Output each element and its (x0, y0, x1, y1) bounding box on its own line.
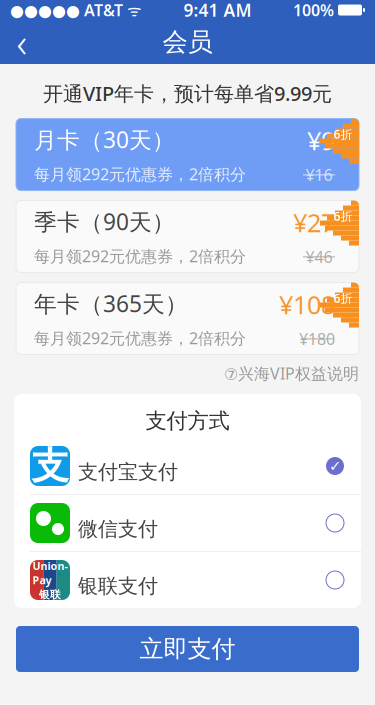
staticText: 支付宝支付 (78, 460, 178, 484)
staticText: 支付方式 (145, 408, 229, 434)
staticText: ¥180 (299, 328, 335, 349)
button[interactable]: 支 (14, 438, 361, 495)
button[interactable]: ⑦兴海VIP权益说明 (224, 363, 359, 384)
staticText: 每月领292元优惠券，2倍积分 (34, 163, 246, 185)
button[interactable]: 季卡（90天） (16, 201, 359, 273)
staticText: 月卡（30天） (34, 124, 175, 154)
staticText: 季卡（90天） (34, 206, 175, 236)
staticText: 银联 (39, 588, 61, 601)
staticText: ‹ (16, 15, 27, 68)
staticText: 年卡（365天） (34, 288, 188, 318)
button[interactable]: 年卡（365天） (16, 283, 359, 355)
staticText: UnionPay (32, 559, 67, 587)
button[interactable]: UnionPay (14, 552, 361, 608)
staticText: ¥16 (305, 164, 332, 185)
staticText: ᯤ (123, 0, 142, 21)
staticText: 银联支付 (78, 574, 158, 598)
staticText: 6折 (333, 290, 352, 306)
staticText: 100% (293, 0, 334, 21)
staticText: ●●●●● AT&T (10, 0, 123, 21)
staticText: 立即支付 (139, 634, 235, 664)
staticText: 每月领292元优惠券，2倍积分 (34, 327, 246, 349)
staticText: 开通VIP年卡，预计每单省9.99元 (43, 80, 332, 107)
button[interactable]: 立即支付 (16, 626, 359, 672)
staticText: 支 (31, 443, 68, 489)
staticText: 6折 (333, 208, 352, 224)
staticText: 9:41 AM (183, 0, 251, 21)
button[interactable]: 微信支付 (14, 495, 361, 552)
staticText: ¥108 (279, 288, 335, 321)
staticText: ¥46 (305, 246, 332, 267)
staticText: ⑦兴海VIP权益说明 (224, 363, 359, 384)
staticText: 会员 (162, 26, 212, 57)
staticText: ¥27 (293, 206, 335, 239)
button[interactable]: 月卡（30天） (16, 119, 359, 191)
button[interactable]: Back (0, 20, 44, 64)
staticText: 每月领292元优惠券，2倍积分 (34, 245, 246, 267)
staticText: ✓ (329, 458, 341, 474)
staticText: ¥9 (307, 124, 335, 157)
staticText: 微信支付 (78, 517, 158, 541)
staticText: 6折 (333, 126, 352, 142)
